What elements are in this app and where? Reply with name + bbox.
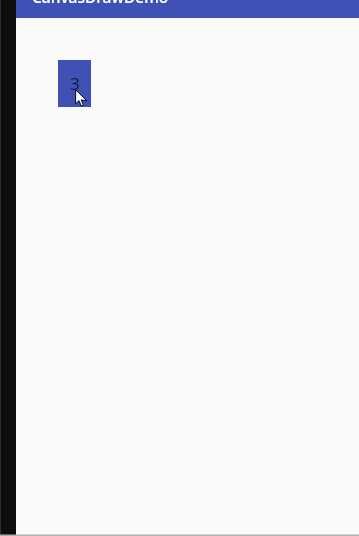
button[interactable]: CanvasDrawDemo — [16, 0, 359, 18]
staticText: CanvasDrawDemo — [32, 0, 169, 4]
staticText: 3 — [70, 72, 80, 95]
button[interactable]: Canvas drawing cell 3 — [58, 60, 91, 107]
